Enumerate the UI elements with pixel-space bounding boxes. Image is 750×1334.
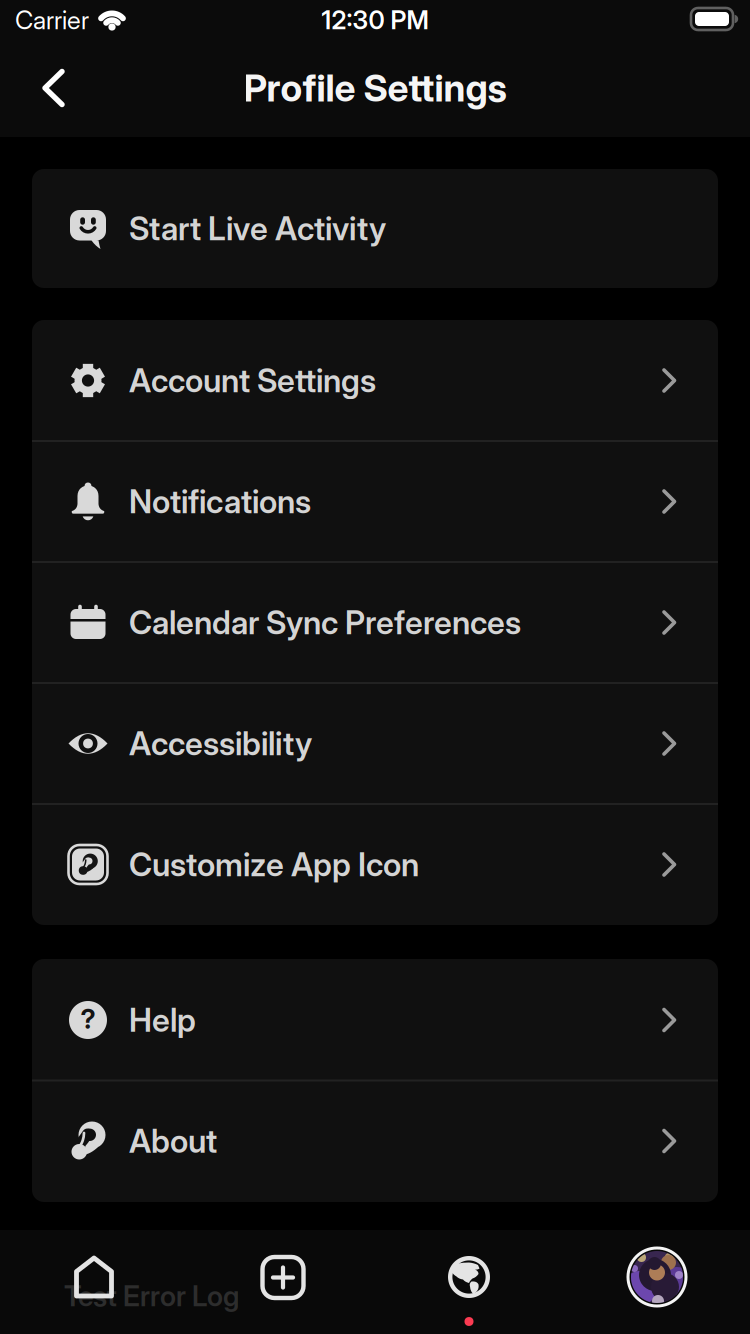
button[interactable]: Create [251, 1245, 315, 1309]
staticText: Carrier [15, 5, 89, 35]
staticText: Account Settings [129, 362, 376, 399]
button[interactable]: Profile [621, 1241, 693, 1313]
staticText: Calendar Sync Preferences [129, 604, 521, 641]
button[interactable]: Explore [438, 1246, 500, 1308]
staticText: Help [129, 1001, 196, 1039]
staticText: 12:30 PM [321, 5, 428, 35]
button[interactable]: Back [30, 57, 78, 119]
staticText: Customize App Icon [129, 846, 419, 883]
button[interactable]: Home [63, 1245, 125, 1309]
staticText: Start Live Activity [129, 210, 386, 247]
button[interactable]: ? [32, 959, 718, 1080]
staticText: Profile Settings [243, 66, 506, 110]
button[interactable]: Notifications [32, 441, 718, 562]
button[interactable]: Calendar Sync Preferences [32, 562, 718, 683]
button[interactable]: Start Live Activity [32, 169, 718, 288]
button[interactable]: Accessibility [32, 683, 718, 804]
button[interactable]: Account Settings [32, 320, 718, 441]
button[interactable]: About [32, 1080, 718, 1201]
staticText: Notifications [129, 483, 311, 520]
staticText: Test Error Log [64, 1279, 239, 1312]
button[interactable]: Customize App Icon [32, 804, 718, 925]
staticText: Accessibility [129, 725, 312, 762]
staticText: ? [80, 1003, 95, 1035]
staticText: About [129, 1122, 217, 1160]
